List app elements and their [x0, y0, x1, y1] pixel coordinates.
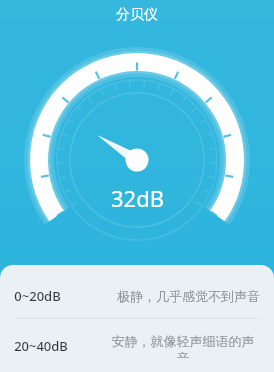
staticText: 安静，就像轻声细语的声音: [106, 333, 260, 359]
staticText: 极静，几乎感觉不到声音: [117, 288, 260, 304]
staticText: 0~20dB: [14, 287, 61, 305]
staticText: 32dB: [111, 183, 164, 213]
staticText: 20~40dB: [14, 337, 68, 355]
button[interactable]: 20~40dB: [0, 319, 274, 372]
button[interactable]: 0~20dB: [0, 265, 274, 318]
staticText: 分贝仪: [116, 6, 158, 24]
